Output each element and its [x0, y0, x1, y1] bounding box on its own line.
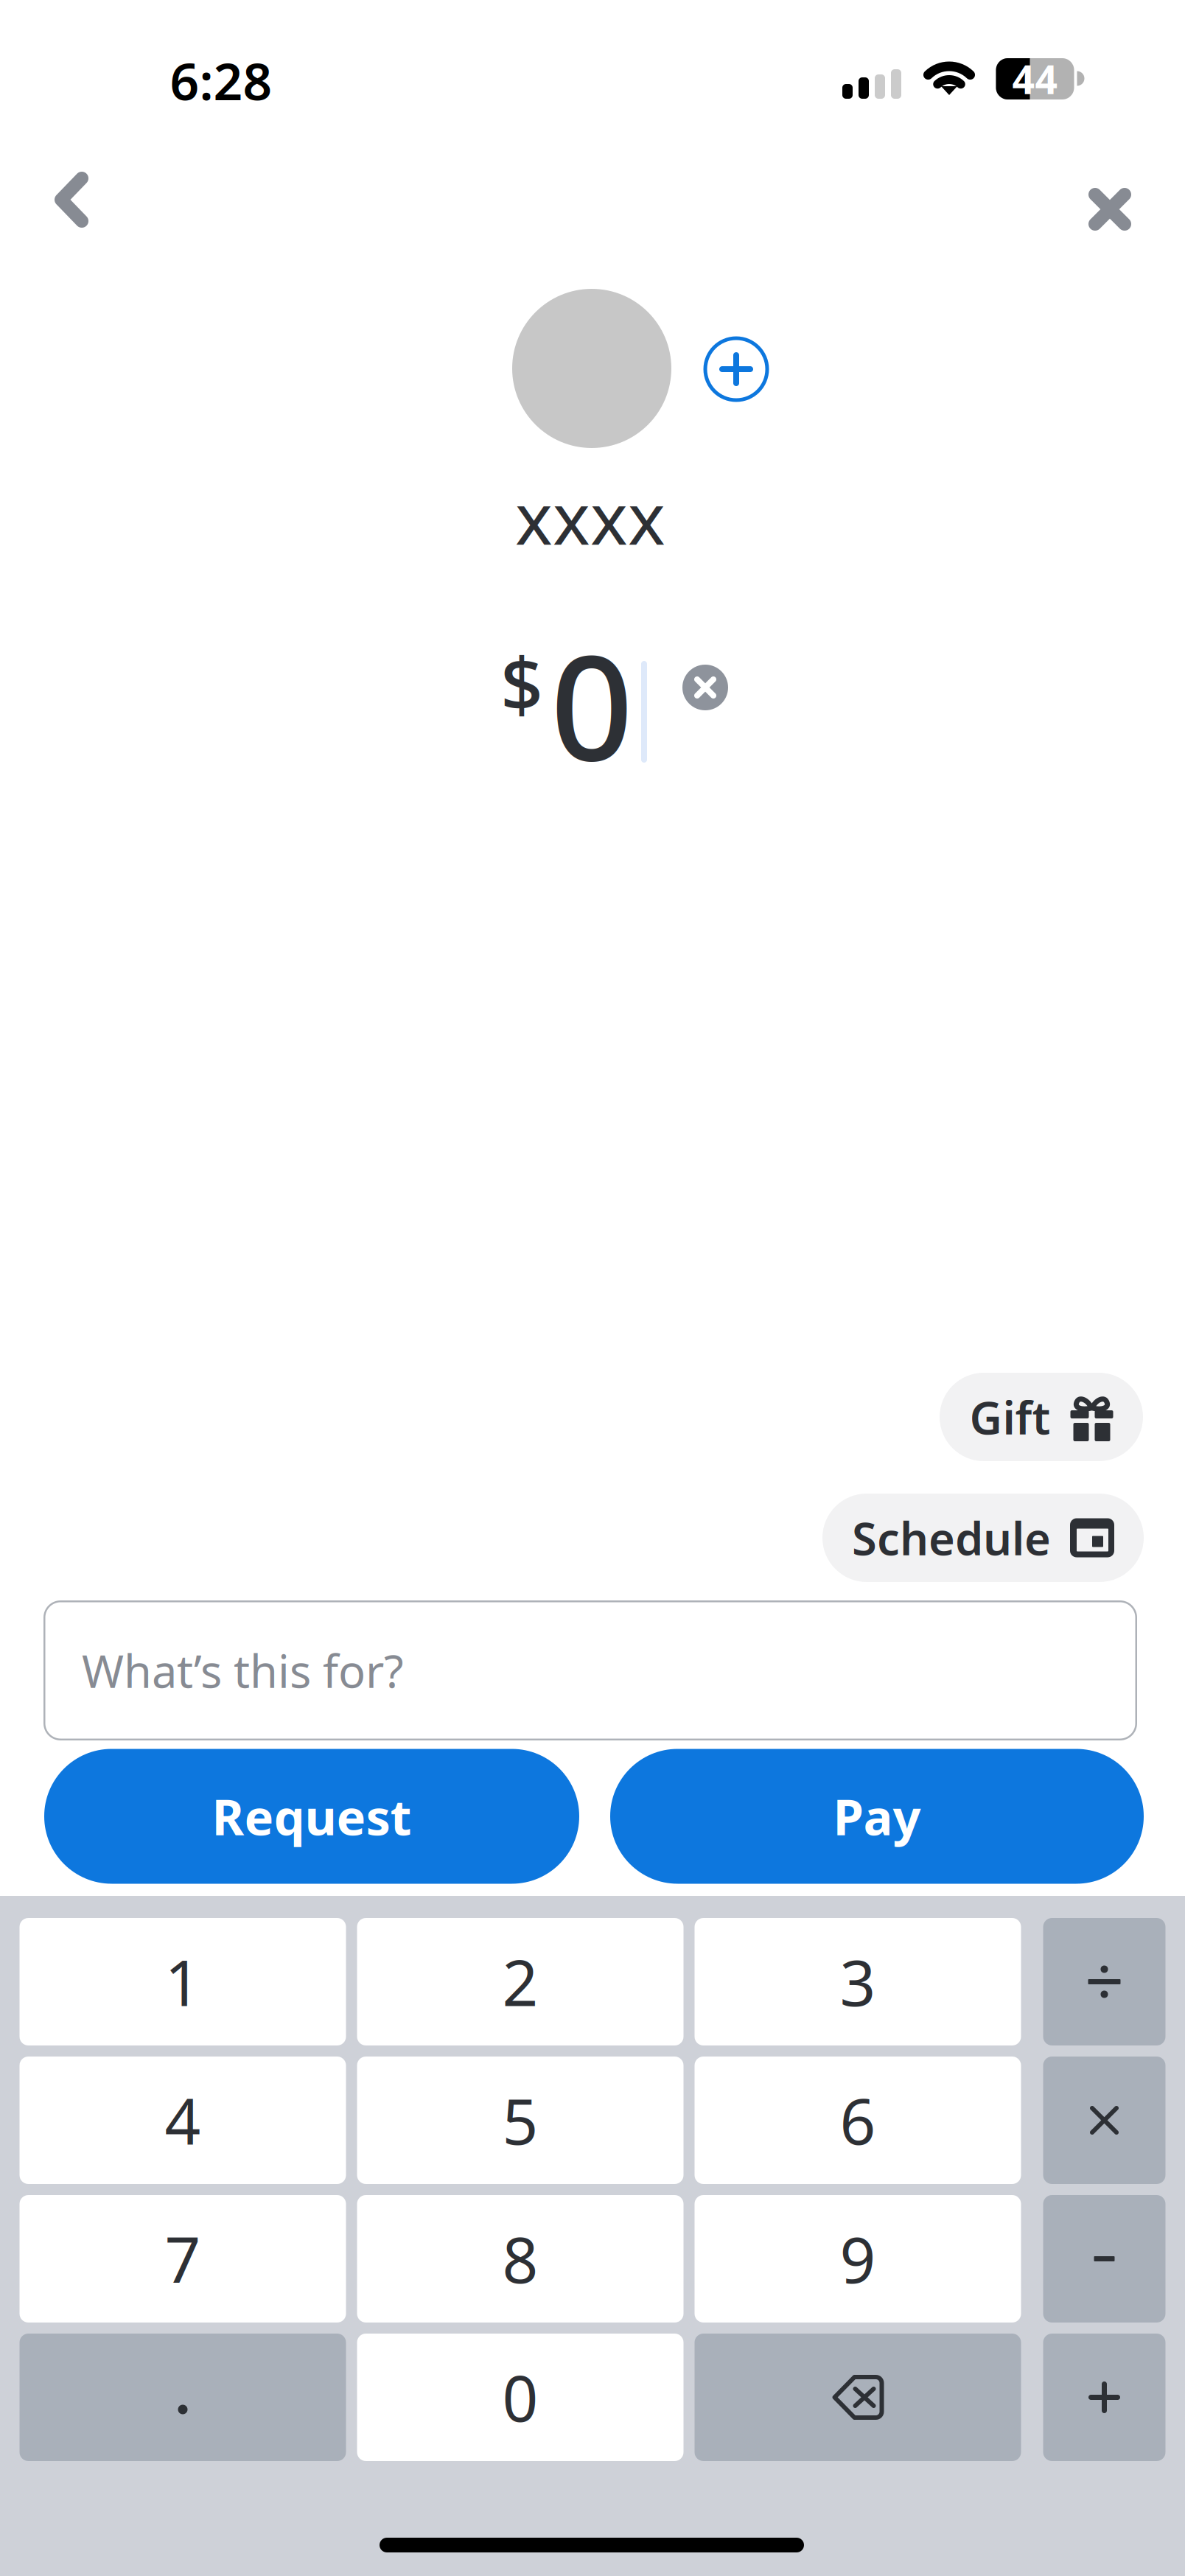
button[interactable]: Close [1055, 154, 1165, 265]
button[interactable]: Pay [610, 1749, 1144, 1884]
button[interactable]: 4 [20, 2057, 346, 2184]
staticText: 1 [165, 1940, 201, 2023]
button[interactable]: 7 [20, 2195, 346, 2323]
button[interactable]: 8 [357, 2195, 684, 2323]
button[interactable]: Gift [940, 1373, 1143, 1461]
staticText: 6 [840, 2078, 876, 2162]
button[interactable]: Multiply [1043, 2057, 1165, 2184]
staticText: 7 [165, 2217, 201, 2300]
staticText: Request [212, 1784, 412, 1849]
button[interactable]: 5 [357, 2057, 684, 2184]
button[interactable]: Divide [1043, 1918, 1165, 2045]
button[interactable]: Decimal point [20, 2334, 346, 2461]
staticText: 0 [502, 2356, 538, 2439]
staticText: 2 [502, 1940, 538, 2023]
button[interactable]: 3 [695, 1918, 1021, 2045]
staticText: 8 [502, 2217, 538, 2300]
staticText: 44 [1012, 53, 1058, 105]
staticText: $ [500, 633, 543, 733]
button[interactable]: Add recipient [692, 325, 780, 413]
button[interactable]: 2 [357, 1918, 684, 2045]
staticText: Gift [969, 1387, 1051, 1447]
button[interactable]: 1 [20, 1918, 346, 2045]
button[interactable]: 0 [357, 2334, 684, 2461]
button[interactable]: Request [44, 1749, 579, 1884]
staticText: What’s this for? [82, 1640, 404, 1700]
button[interactable]: 6 [695, 2057, 1021, 2184]
staticText: 3 [840, 1940, 876, 2023]
button[interactable]: Minus [1043, 2195, 1165, 2323]
button[interactable]: Schedule [822, 1494, 1144, 1582]
staticText: 4 [165, 2078, 201, 2162]
staticText: 5 [502, 2078, 538, 2162]
button[interactable]: Clear amount [668, 651, 742, 724]
staticText: 9 [840, 2217, 876, 2300]
button[interactable]: What’s this for? [43, 1600, 1137, 1740]
button[interactable]: Plus [1043, 2334, 1165, 2461]
staticText: Schedule [852, 1508, 1051, 1568]
button[interactable]: Back [16, 144, 127, 255]
button[interactable]: Delete [695, 2334, 1021, 2461]
staticText: 6:28 [170, 46, 272, 114]
staticText: xxxx [515, 470, 665, 564]
staticText: 0 [550, 609, 633, 800]
staticText: Pay [833, 1784, 921, 1849]
button[interactable]: 9 [695, 2195, 1021, 2323]
